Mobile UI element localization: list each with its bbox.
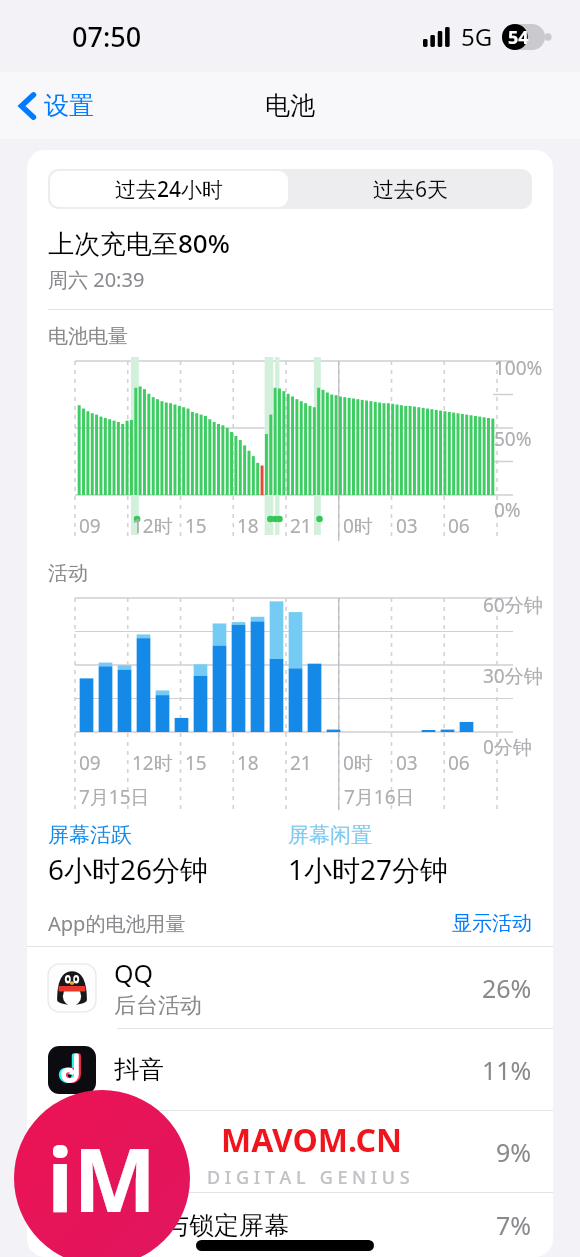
staticText: 06 (448, 750, 470, 776)
staticText: 屏幕闲置 (288, 822, 372, 848)
staticText: QQ (114, 956, 154, 990)
staticText: 0时 (343, 750, 373, 776)
staticText: 15 (185, 750, 207, 776)
button[interactable]: 9% (27, 1111, 553, 1192)
other: 抖音 (48, 1046, 96, 1094)
staticText: 18 (237, 513, 259, 539)
staticText: 电池电量 (48, 324, 128, 349)
staticText: 周六 20:39 (48, 266, 145, 293)
staticText: D I G I T A L G E N I U S (207, 1165, 410, 1190)
staticText: 50% (494, 426, 532, 452)
staticText: 12时 (132, 750, 173, 776)
staticText: 9% (496, 1135, 532, 1169)
staticText: 15 (185, 513, 207, 539)
button[interactable]: 过去6天 (290, 169, 532, 209)
staticText: 抖音 (114, 1054, 164, 1085)
staticText: 0% (494, 497, 521, 523)
staticText: 7月15日 (79, 784, 150, 810)
staticText: 06 (448, 513, 470, 539)
staticText: 活动 (48, 561, 88, 586)
staticText: 07:50 (72, 18, 142, 55)
button[interactable]: 设置 (12, 82, 102, 129)
staticText: 03 (396, 513, 418, 539)
other: QQ (48, 964, 96, 1012)
staticText: 7% (496, 1208, 532, 1242)
button[interactable]: 抖音 (27, 1029, 553, 1110)
button[interactable]: 显示活动 (452, 911, 532, 936)
button[interactable]: QQ (27, 947, 553, 1028)
staticText: 54 (508, 25, 529, 50)
staticText: 26% (482, 971, 532, 1005)
staticText: 电池 (265, 90, 315, 121)
staticText: 03 (396, 750, 418, 776)
staticText: 设置 (44, 90, 94, 121)
staticText: App的电池用量 (48, 910, 186, 937)
staticText: 后台活动 (114, 992, 202, 1020)
staticText: 21 (290, 513, 312, 539)
button[interactable]: 屏幕与锁定屏幕 (27, 1193, 553, 1257)
staticText: 6小时26分钟 (48, 850, 209, 888)
staticText: 60分钟 (483, 592, 543, 618)
staticText: 过去24小时 (115, 175, 224, 204)
button[interactable]: 过去24小时 (50, 171, 288, 207)
staticText: 30分钟 (483, 663, 543, 689)
staticText: 屏幕与锁定屏幕 (114, 1210, 289, 1241)
staticText: 100% (494, 355, 543, 381)
other: 屏幕与锁定屏幕 (48, 1201, 96, 1249)
staticText: iM (47, 1118, 157, 1238)
staticText: 18 (237, 750, 259, 776)
staticText: 09 (79, 750, 101, 776)
staticText: 过去6天 (373, 175, 449, 204)
staticText: 09 (79, 513, 101, 539)
staticText: 5G (461, 20, 493, 53)
staticText: 屏幕活跃 (48, 822, 132, 848)
staticText: 0时 (343, 513, 373, 539)
staticText: 0分钟 (483, 734, 532, 760)
staticText: 7月16日 (344, 784, 415, 810)
staticText: 显示活动 (452, 911, 532, 936)
staticText: MAVOM.CN (221, 1118, 402, 1162)
staticText: 21 (290, 750, 312, 776)
staticText: 11% (482, 1053, 532, 1087)
staticText: 12时 (132, 513, 173, 539)
staticText: 1小时27分钟 (288, 850, 449, 888)
staticText: 上次充电至80% (48, 225, 230, 261)
